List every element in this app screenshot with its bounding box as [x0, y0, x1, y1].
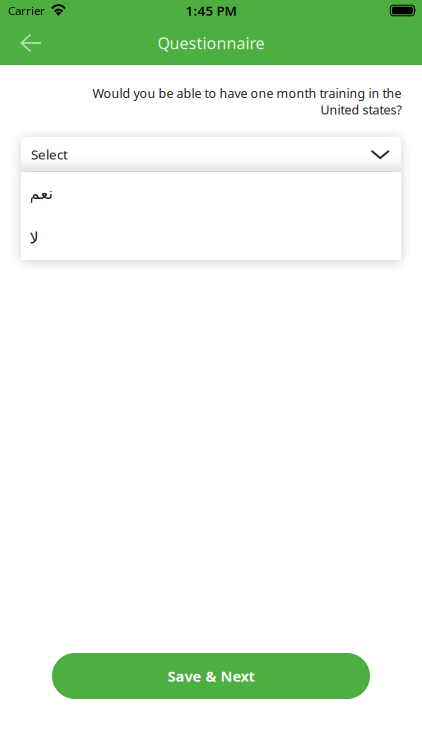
button[interactable]: نعم: [21, 172, 401, 213]
staticText: Carrier: [8, 3, 45, 18]
staticText: Questionnaire: [157, 32, 264, 54]
staticText: Would you be able to have one month trai…: [92, 85, 401, 118]
button[interactable]: Save & Next: [52, 653, 370, 699]
button[interactable]: لا: [21, 213, 401, 254]
staticText: Select: [31, 146, 68, 163]
staticText: Save & Next: [167, 666, 254, 686]
button[interactable]: Back: [9, 21, 53, 65]
staticText: نعم: [29, 184, 52, 203]
staticText: 1:45 PM: [185, 2, 236, 19]
staticText: لا: [29, 229, 38, 247]
button[interactable]: Select: [21, 137, 401, 172]
